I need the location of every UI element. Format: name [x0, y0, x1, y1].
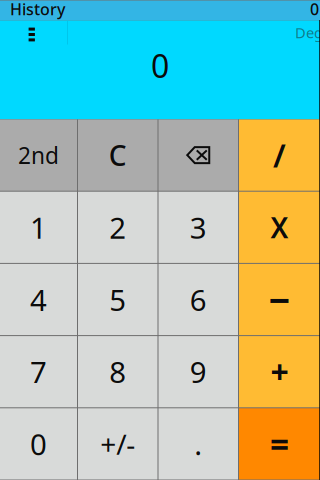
staticText: History — [10, 0, 65, 20]
button[interactable]: 4 — [0, 264, 77, 335]
staticText: 0 — [151, 44, 169, 87]
staticText: / — [273, 134, 286, 176]
button[interactable]: 8 — [78, 336, 157, 407]
staticText: 1 — [30, 208, 47, 247]
staticText: = — [270, 422, 289, 466]
staticText: Deg — [295, 23, 320, 42]
button[interactable]: History — [0, 0, 65, 20]
button[interactable]: C — [78, 119, 157, 191]
staticText: 8 — [109, 352, 126, 391]
button[interactable]: 6 — [158, 264, 238, 335]
staticText: 2nd — [18, 140, 59, 170]
staticText: + — [270, 350, 288, 393]
staticText: 6 — [190, 280, 207, 319]
button[interactable]: 0 — [0, 408, 77, 479]
button[interactable]: 2 — [78, 192, 157, 263]
staticText: 9 — [190, 352, 207, 391]
button[interactable]: 9 — [158, 336, 238, 407]
button[interactable]: X — [239, 192, 320, 263]
button[interactable]: +/- — [78, 408, 157, 479]
staticText: +/- — [100, 425, 135, 462]
staticText: C — [109, 136, 127, 174]
button[interactable]: Delete — [158, 119, 238, 191]
button[interactable]: − — [239, 264, 320, 335]
button[interactable]: 3 — [158, 192, 238, 263]
staticText: − — [268, 275, 290, 324]
staticText: 2 — [109, 208, 126, 247]
button[interactable]: 7 — [0, 336, 77, 407]
staticText: 0 — [310, 0, 319, 20]
button[interactable]: 1 — [0, 192, 77, 263]
staticText: 5 — [109, 280, 126, 319]
button[interactable]: History menu — [0, 20, 62, 56]
button[interactable]: 5 — [78, 264, 157, 335]
button[interactable]: 0 — [310, 0, 320, 20]
button[interactable]: + — [239, 336, 320, 407]
staticText: X — [270, 209, 288, 246]
staticText: 7 — [30, 352, 47, 391]
staticText: 4 — [30, 280, 47, 319]
button[interactable]: / — [239, 119, 320, 191]
staticText: 0 — [30, 424, 47, 463]
button[interactable]: = — [239, 408, 320, 479]
staticText: 3 — [190, 208, 207, 247]
staticText: . — [194, 424, 202, 463]
button[interactable]: 2nd — [0, 119, 77, 191]
button[interactable]: . — [158, 408, 238, 479]
